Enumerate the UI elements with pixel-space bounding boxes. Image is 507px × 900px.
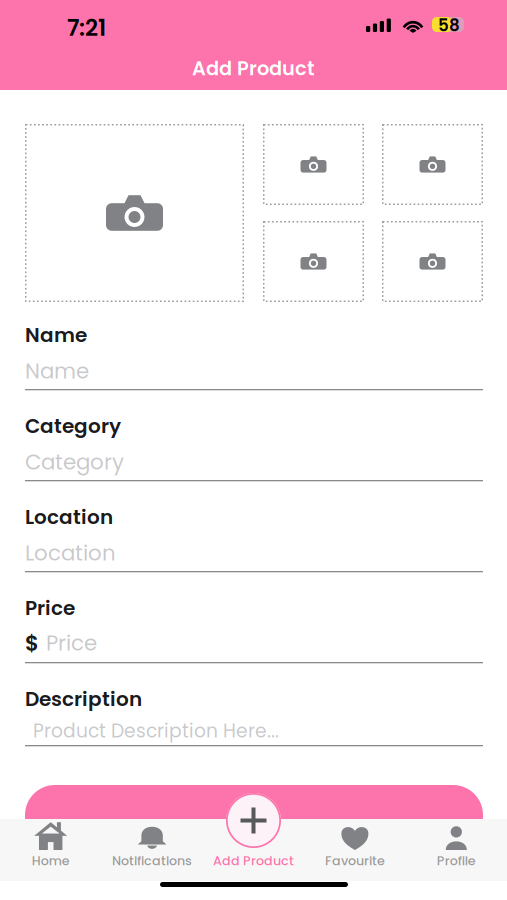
button[interactable]: Add photo bbox=[263, 124, 364, 205]
staticText: $ bbox=[25, 628, 39, 658]
staticText: Price bbox=[46, 628, 97, 658]
staticText: Location bbox=[25, 538, 116, 568]
button[interactable]: Profile bbox=[406, 819, 507, 881]
staticText: Product Description Here... bbox=[33, 718, 279, 744]
staticText: Name bbox=[25, 356, 89, 386]
staticText: Category bbox=[25, 412, 121, 440]
staticText: Price bbox=[25, 594, 75, 622]
button[interactable]: Notifications bbox=[101, 819, 203, 881]
staticText: Name bbox=[25, 321, 87, 349]
staticText: Profile bbox=[437, 852, 476, 870]
staticText: 58 bbox=[438, 14, 460, 37]
staticText: Description bbox=[25, 685, 142, 713]
button[interactable] bbox=[25, 785, 483, 849]
staticText: Add Product bbox=[213, 852, 294, 870]
staticText: Add Product bbox=[192, 55, 315, 82]
button[interactable]: Add Product bbox=[226, 793, 281, 848]
staticText: Category bbox=[25, 447, 124, 477]
staticText: Location bbox=[25, 503, 113, 531]
staticText: 7:21 bbox=[67, 12, 106, 44]
button[interactable]: Add photo bbox=[25, 124, 244, 302]
button[interactable]: Home bbox=[0, 819, 101, 881]
button[interactable]: Add Product bbox=[203, 819, 304, 881]
button[interactable]: Add photo bbox=[382, 221, 483, 302]
staticText: Home bbox=[32, 852, 70, 870]
staticText: Favourite bbox=[325, 852, 385, 870]
button[interactable]: Favourite bbox=[304, 819, 406, 881]
staticText: Notifications bbox=[112, 852, 192, 870]
button[interactable]: Add photo bbox=[263, 221, 364, 302]
button[interactable]: Add photo bbox=[382, 124, 483, 205]
